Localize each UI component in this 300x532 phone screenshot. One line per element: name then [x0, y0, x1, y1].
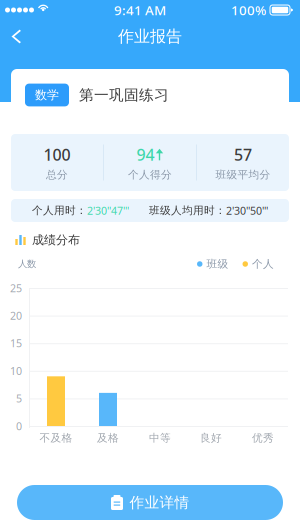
- staticText: 班级: [206, 257, 228, 270]
- staticText: 数学: [35, 88, 59, 102]
- staticText: 2'30''47''': [87, 203, 129, 218]
- button[interactable]: 作业详情: [17, 485, 283, 520]
- staticText: 总分: [46, 168, 68, 181]
- staticText: 100%: [231, 1, 266, 19]
- staticText: 15: [10, 336, 22, 350]
- staticText: 成绩分布: [32, 233, 80, 247]
- staticText: 10: [10, 364, 22, 378]
- staticText: 25: [10, 281, 22, 295]
- staticText: 57: [234, 144, 252, 165]
- staticText: 个人: [252, 257, 274, 270]
- button[interactable]: Back: [0, 20, 37, 53]
- staticText: 个人用时：: [32, 204, 87, 217]
- staticText: 班级平均分: [215, 168, 270, 181]
- staticText: 作业详情: [129, 493, 189, 511]
- staticText: 人数: [18, 258, 36, 270]
- staticText: 94: [136, 144, 154, 165]
- staticText: 班级人均用时：: [149, 204, 226, 217]
- staticText: 良好: [200, 431, 222, 444]
- staticText: 2'30''50''': [226, 203, 268, 218]
- staticText: 20: [10, 308, 22, 323]
- staticText: 优秀: [252, 431, 274, 444]
- staticText: 作业报告: [118, 27, 182, 46]
- staticText: 0: [16, 419, 22, 433]
- staticText: 第一巩固练习: [79, 86, 169, 104]
- staticText: 9:41 AM: [114, 1, 166, 19]
- staticText: 不及格: [39, 431, 72, 444]
- staticText: 及格: [97, 431, 119, 444]
- staticText: 个人得分: [128, 168, 172, 181]
- staticText: 5: [16, 391, 22, 405]
- staticText: 100: [43, 144, 70, 165]
- staticText: 中等: [149, 431, 171, 444]
